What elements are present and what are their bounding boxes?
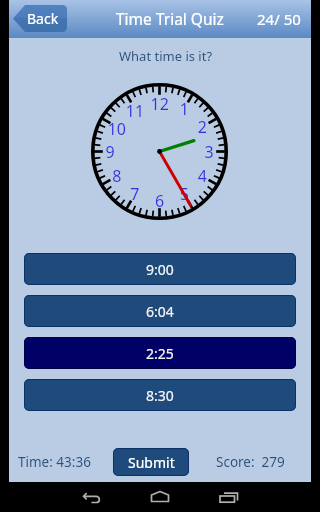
staticText: Time Trial Quiz — [116, 8, 224, 29]
button[interactable]: Back — [13, 5, 67, 32]
staticText: 6:04 — [146, 302, 174, 321]
button[interactable]: 8:30 — [24, 379, 296, 411]
button[interactable]: Submit — [113, 448, 189, 476]
button[interactable]: Back — [74, 483, 110, 512]
staticText: Score: 279 — [216, 453, 285, 471]
staticText: 8:30 — [146, 386, 174, 405]
staticText: What time is it? — [119, 47, 213, 65]
staticText: Time: 43:36 — [18, 453, 91, 471]
staticText: 2:25 — [146, 344, 174, 363]
button[interactable]: 2:25 — [24, 337, 296, 369]
button[interactable]: Recent apps — [210, 483, 246, 512]
staticText: 24/ 50 — [257, 9, 301, 29]
staticText: 9:00 — [146, 260, 174, 279]
button[interactable]: 6:04 — [24, 295, 296, 327]
button[interactable]: Home — [142, 483, 178, 512]
staticText: Back — [27, 9, 59, 28]
button[interactable]: 9:00 — [24, 253, 296, 285]
staticText: Submit — [128, 453, 175, 472]
